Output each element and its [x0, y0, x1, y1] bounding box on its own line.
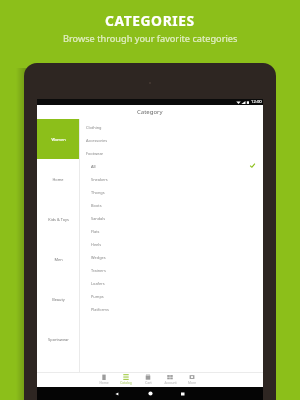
button[interactable]: Sandals — [80, 212, 263, 225]
button[interactable]: Sneakers — [80, 173, 263, 186]
staticText: Heels — [91, 242, 102, 247]
staticText: Wedges — [91, 255, 106, 260]
button[interactable]: Flats — [80, 225, 263, 238]
staticText: CATEGORIES — [105, 11, 195, 30]
staticText: Footwear — [86, 151, 104, 156]
staticText: Sandals — [91, 216, 106, 221]
button[interactable]: Home — [95, 373, 113, 386]
staticText: Clothing — [86, 125, 102, 130]
button[interactable]: Cart — [139, 373, 157, 386]
staticText: Thongs — [91, 190, 105, 195]
staticText: 12:00 — [251, 99, 262, 105]
staticText: Kids & Toys — [48, 217, 69, 222]
staticText: Platforms — [91, 307, 109, 312]
staticText: Sportswear — [48, 337, 69, 342]
button[interactable]: Thongs — [80, 186, 263, 199]
other: Back — [115, 392, 119, 396]
staticText: Browse through your favorite categories — [63, 32, 238, 45]
other: Home — [148, 391, 153, 396]
staticText: Loafers — [91, 281, 105, 286]
button[interactable]: Footwear — [80, 147, 263, 160]
staticText: Category — [137, 108, 163, 116]
button[interactable]: Sportswear — [37, 319, 79, 359]
staticText: Account — [164, 381, 177, 385]
staticText: Boots — [91, 203, 102, 208]
button[interactable]: Home — [37, 159, 79, 199]
staticText: Beauty — [52, 297, 65, 302]
button[interactable]: Accessories — [80, 134, 263, 147]
button[interactable]: Trainers — [80, 264, 263, 277]
button[interactable]: Men — [37, 239, 79, 279]
staticText: Cart — [145, 381, 152, 385]
button[interactable]: Loafers — [80, 277, 263, 290]
staticText: Flats — [91, 229, 100, 234]
button[interactable]: Beauty — [37, 279, 79, 319]
button[interactable]: Heels — [80, 238, 263, 251]
button[interactable]: Clothing — [80, 121, 263, 134]
staticText: Women — [51, 137, 66, 142]
staticText: Home — [52, 177, 64, 182]
button[interactable]: All — [80, 160, 263, 173]
staticText: Home — [99, 381, 109, 385]
button[interactable]: Pumps — [80, 290, 263, 303]
staticText: Pumps — [91, 294, 104, 299]
button[interactable]: Wedges — [80, 251, 263, 264]
staticText: More — [188, 381, 196, 385]
button[interactable]: Catalog — [117, 373, 135, 386]
other: Recent apps — [181, 392, 185, 396]
staticText: Men — [54, 257, 63, 262]
button[interactable]: More — [183, 373, 201, 386]
button[interactable]: Platforms — [80, 303, 263, 316]
button[interactable]: Women — [37, 119, 79, 159]
button[interactable]: Boots — [80, 199, 263, 212]
button[interactable]: Account — [161, 373, 179, 386]
staticText: Accessories — [86, 138, 108, 143]
staticText: Trainers — [91, 268, 106, 273]
staticText: All — [91, 164, 96, 169]
staticText: Sneakers — [91, 177, 108, 182]
button[interactable]: Kids & Toys — [37, 199, 79, 239]
staticText: Catalog — [120, 381, 132, 385]
